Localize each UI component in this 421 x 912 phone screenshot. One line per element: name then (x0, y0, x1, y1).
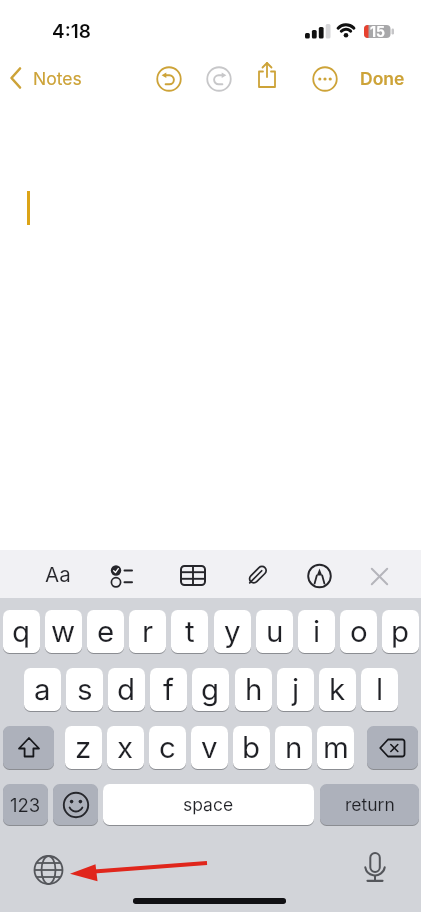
button[interactable] (206, 66, 232, 92)
staticText: m (323, 729, 349, 765)
button[interactable]: i (298, 610, 335, 653)
staticText: x (117, 729, 134, 765)
button[interactable] (53, 784, 98, 825)
staticText: v (201, 729, 218, 765)
button[interactable]: space (103, 784, 314, 825)
button[interactable] (3, 726, 54, 769)
staticText: d (117, 671, 136, 707)
button[interactable] (363, 851, 389, 885)
staticText: e (97, 613, 115, 649)
button[interactable]: q (3, 610, 40, 653)
button[interactable]: return (320, 784, 419, 825)
button[interactable]: e (87, 610, 124, 653)
staticText: a (34, 671, 51, 707)
staticText: p (391, 613, 410, 649)
button[interactable]: a (24, 668, 61, 711)
button[interactable]: r (129, 610, 166, 653)
button[interactable]: s (66, 668, 103, 711)
staticText: i (313, 613, 321, 649)
button[interactable]: k (319, 668, 356, 711)
staticText: r (142, 613, 154, 649)
staticText: h (245, 671, 263, 707)
button[interactable] (156, 66, 182, 92)
staticText: l (376, 671, 384, 707)
button[interactable]: Aa (45, 562, 71, 587)
button[interactable]: d (108, 668, 145, 711)
button[interactable]: p (382, 610, 419, 653)
button[interactable]: y (214, 610, 251, 653)
button[interactable]: b (233, 726, 270, 769)
staticText: o (350, 613, 368, 649)
staticText: w (51, 613, 76, 649)
button[interactable] (244, 561, 271, 589)
button[interactable] (371, 568, 388, 585)
button[interactable]: n (275, 726, 312, 769)
staticText: z (75, 729, 92, 765)
button[interactable] (33, 855, 64, 885)
staticText: n (285, 729, 303, 765)
button[interactable] (367, 726, 418, 769)
button[interactable] (108, 563, 134, 588)
button[interactable]: m (317, 726, 354, 769)
button[interactable]: f (150, 668, 187, 711)
button[interactable]: l (361, 668, 398, 711)
button[interactable]: u (256, 610, 293, 653)
staticText: space (183, 794, 234, 815)
staticText: y (224, 613, 241, 649)
button[interactable]: c (149, 726, 186, 769)
button[interactable]: j (277, 668, 314, 711)
staticText: u (266, 613, 284, 649)
button[interactable]: o (340, 610, 377, 653)
button[interactable]: g (192, 668, 229, 711)
button[interactable] (307, 564, 332, 589)
button[interactable] (8, 66, 24, 90)
button[interactable]: Done (360, 68, 405, 89)
staticText: 4:18 (52, 20, 91, 43)
staticText: return (345, 794, 395, 815)
staticText: t (185, 613, 195, 649)
button[interactable] (180, 565, 206, 586)
staticText: 15 (370, 23, 385, 40)
staticText: g (201, 671, 220, 707)
button[interactable]: t (171, 610, 208, 653)
staticText: c (159, 729, 176, 765)
staticText: f (163, 671, 174, 707)
button[interactable] (312, 66, 338, 92)
button[interactable]: v (191, 726, 228, 769)
button[interactable]: w (45, 610, 82, 653)
staticText: q (12, 613, 31, 649)
button[interactable]: x (107, 726, 144, 769)
button[interactable] (255, 61, 279, 91)
staticText: j (292, 671, 300, 707)
button[interactable]: h (235, 668, 272, 711)
button[interactable]: Notes (33, 68, 82, 89)
button[interactable]: z (65, 726, 102, 769)
staticText: k (329, 671, 346, 707)
button[interactable]: 123 (3, 784, 48, 825)
staticText: 123 (10, 794, 41, 816)
staticText: b (242, 729, 261, 765)
staticText: s (77, 671, 93, 707)
